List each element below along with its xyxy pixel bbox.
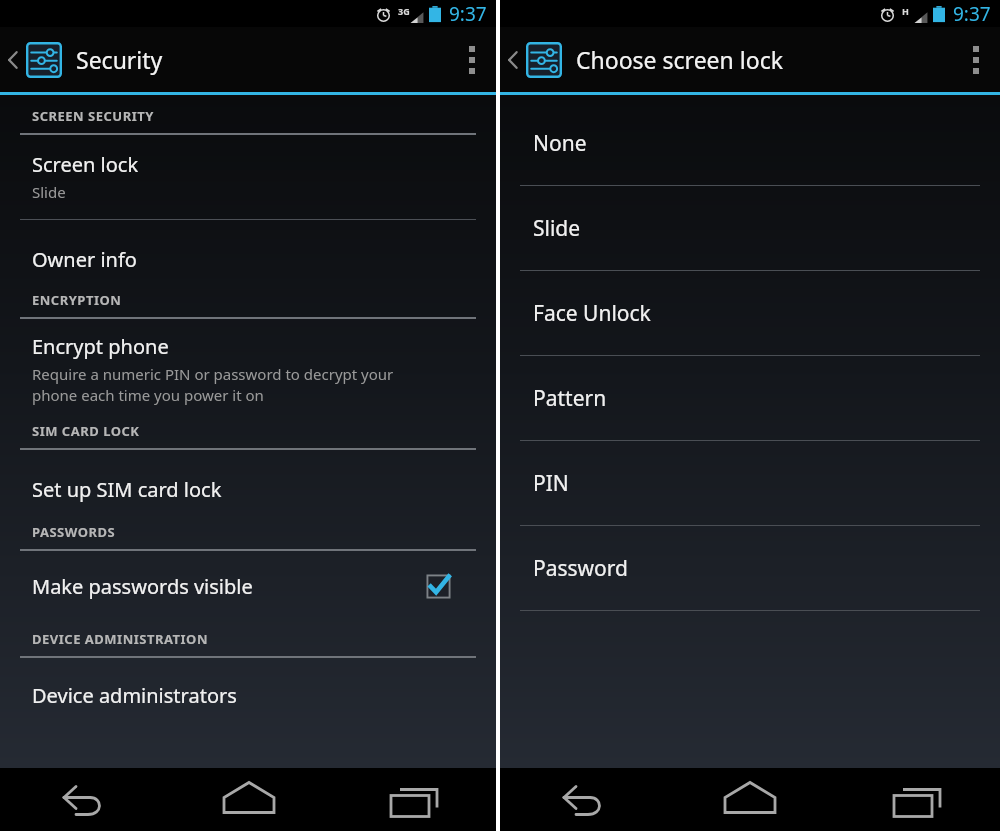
button[interactable]: Screen lock — [0, 135, 496, 220]
button[interactable]: Navigate up — [0, 27, 68, 92]
button[interactable]: Slide — [500, 186, 1000, 271]
staticText: Password — [533, 554, 628, 583]
button[interactable]: More options — [448, 27, 496, 92]
button[interactable]: Face Unlock — [500, 271, 1000, 356]
button[interactable]: Home — [666, 768, 833, 831]
staticText: 9:37 — [953, 1, 991, 27]
staticText: 3G — [398, 5, 410, 17]
button[interactable]: None — [500, 101, 1000, 186]
staticText: Slide — [533, 214, 581, 243]
button[interactable]: Navigate up — [500, 27, 568, 92]
staticText: H — [902, 5, 909, 17]
staticText: PIN — [533, 469, 569, 498]
staticText: Require a numeric PIN or password to dec… — [32, 364, 394, 406]
button[interactable]: PIN — [500, 441, 1000, 526]
staticText: Set up SIM card lock — [32, 476, 222, 503]
button[interactable]: Owner info — [0, 220, 496, 281]
button[interactable]: More options — [952, 27, 1000, 92]
button[interactable]: Device administrators — [0, 658, 496, 717]
staticText: Make passwords visible — [32, 573, 253, 600]
staticText: PASSWORDS — [32, 523, 116, 541]
button[interactable]: Back — [500, 768, 666, 831]
staticText: Security — [76, 44, 163, 75]
button[interactable]: Make passwords visible — [0, 551, 496, 616]
staticText: 9:37 — [449, 1, 487, 27]
staticText: Encrypt phone — [32, 333, 169, 360]
staticText: Slide — [32, 182, 66, 202]
button[interactable]: Back — [0, 768, 166, 831]
staticText: Choose screen lock — [576, 44, 783, 75]
staticText: Face Unlock — [533, 299, 651, 328]
staticText: SIM CARD LOCK — [32, 422, 140, 440]
staticText: ENCRYPTION — [32, 291, 122, 309]
button[interactable]: Recent apps — [331, 768, 496, 831]
button[interactable]: Set up SIM card lock — [0, 450, 496, 511]
button[interactable]: Password — [500, 526, 1000, 611]
button[interactable]: Pattern — [500, 356, 1000, 441]
button[interactable]: Encrypt phone — [0, 319, 496, 416]
staticText: Pattern — [533, 384, 607, 413]
staticText: DEVICE ADMINISTRATION — [32, 630, 208, 648]
button[interactable]: Recent apps — [833, 768, 1000, 831]
staticText: None — [533, 129, 587, 158]
button[interactable]: Home — [166, 768, 331, 831]
staticText: Owner info — [32, 246, 137, 273]
staticText: Device administrators — [32, 682, 237, 709]
staticText: Screen lock — [32, 151, 139, 178]
staticText: SCREEN SECURITY — [32, 107, 154, 125]
